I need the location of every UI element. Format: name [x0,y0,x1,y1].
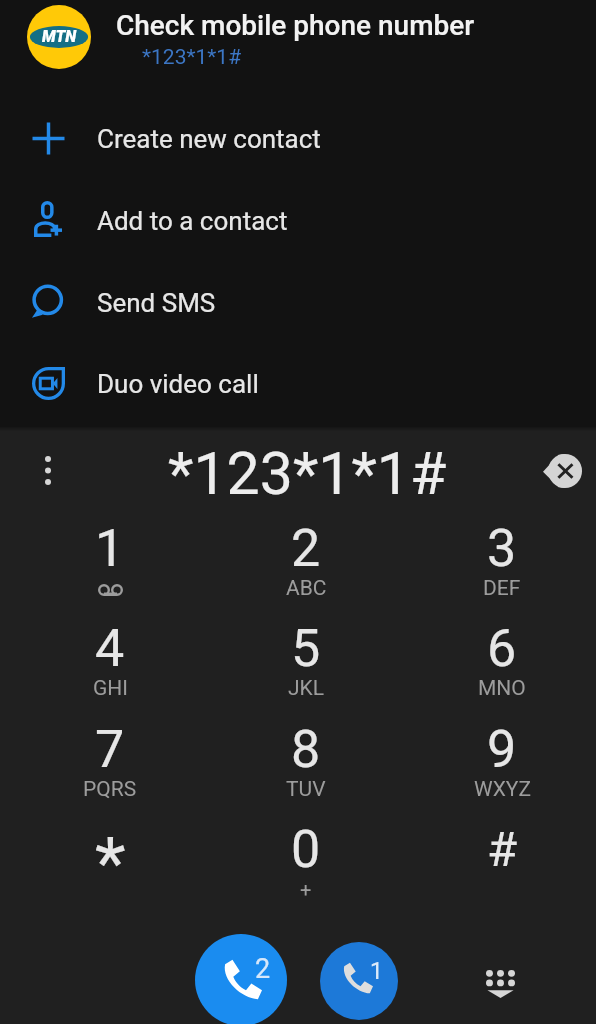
staticText: 3 [487,518,517,579]
button[interactable]: Backspace [539,448,585,494]
staticText: 1 [95,518,125,579]
staticText: MNO [478,676,526,701]
staticText: 2 [291,518,321,579]
button[interactable]: # [404,809,596,910]
button[interactable]: Add to a contact [0,180,596,262]
staticText: 7 [95,719,125,780]
staticText: Duo video call [97,369,259,399]
button[interactable]: Send SMS [0,262,596,344]
button[interactable]: 6 [404,608,596,709]
staticText: PQRS [83,777,137,802]
staticText: + [300,878,312,901]
button[interactable]: 9 [404,709,596,810]
staticText: GHI [93,676,128,701]
staticText: Send SMS [97,288,216,318]
staticText: 8 [291,719,321,780]
staticText: 4 [95,618,125,679]
staticText: WXYZ [474,777,531,802]
staticText: *123*1*1# [168,439,447,508]
button[interactable]: 2 [208,508,404,609]
button[interactable]: 3 [404,508,596,609]
staticText: JKL [288,676,325,701]
staticText: MTN [42,27,77,46]
staticText: 6 [487,618,517,679]
button[interactable]: 4 [12,608,208,709]
staticText: Create new contact [97,124,321,154]
staticText: 2 [255,953,271,985]
button[interactable]: * [12,809,208,910]
staticText: 1 [370,958,383,985]
button[interactable]: Hide dialpad [478,962,522,1006]
button[interactable]: Call [195,934,287,1024]
staticText: 9 [487,719,517,780]
button[interactable]: Duo video call [0,343,596,425]
staticText: 5 [291,618,321,679]
button[interactable]: 0 [208,809,404,910]
staticText: *123*1*1# [142,45,242,70]
button[interactable]: 8 [208,709,404,810]
button[interactable]: 5 [208,608,404,709]
button[interactable]: MTN [0,0,596,93]
staticText: * [95,821,126,904]
staticText: Check mobile phone number [116,9,475,42]
staticText: DEF [483,576,521,601]
staticText: # [487,821,518,878]
button[interactable]: Create new contact [0,98,596,180]
staticText: ABC [286,576,327,601]
staticText: 0 [291,819,321,880]
button[interactable]: Call with SIM 1 [320,942,398,1020]
button[interactable]: More options [29,452,66,489]
staticText: TUV [286,777,326,802]
button[interactable]: 7 [12,709,208,810]
button[interactable]: 1 [12,508,208,609]
staticText: Add to a contact [97,206,288,236]
